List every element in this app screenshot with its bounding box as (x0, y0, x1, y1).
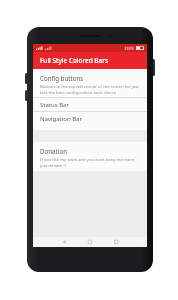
button[interactable]: Back (33, 237, 71, 247)
button[interactable]: Recents (109, 237, 147, 247)
button[interactable]: Navigation Bar (33, 112, 147, 125)
staticText: Config buttons (40, 74, 84, 82)
button[interactable]: Full Style Colored Bars (33, 52, 147, 69)
button[interactable]: Home (71, 237, 109, 247)
staticText: Full Style Colored Bars (40, 56, 108, 65)
staticText: If you like my work and you want keep me… (40, 157, 141, 168)
staticText: Donation (40, 147, 67, 155)
staticText: Buttons in the top left corner of the sc… (40, 84, 141, 95)
staticText: Status Bar (40, 101, 69, 109)
staticText: Navigation Bar (40, 115, 82, 123)
button[interactable]: Status Bar (33, 98, 147, 111)
